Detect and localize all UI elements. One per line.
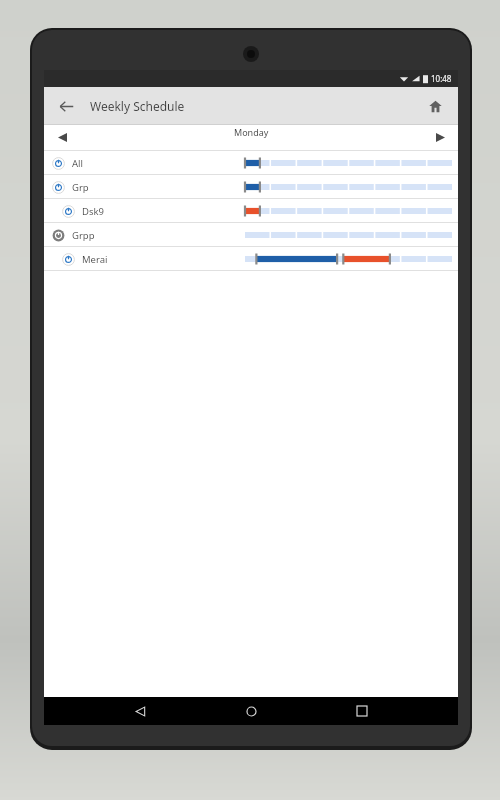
button[interactable]: Next day [430,127,450,147]
button[interactable]: Recents [347,697,377,725]
staticText: Merai [82,253,108,266]
staticText: All [72,157,83,170]
button[interactable]: Back [50,90,82,122]
button[interactable]: All [44,151,458,175]
staticText: Grpp [72,229,95,242]
staticText: 10:48 [431,73,452,84]
button[interactable]: Home [420,91,450,121]
staticText: Grp [72,181,89,194]
button[interactable]: Dsk9 [44,199,458,223]
button[interactable]: Home [236,697,266,725]
staticText: Weekly Schedule [90,98,185,114]
button[interactable]: Merai [44,247,458,271]
button[interactable]: Grp [44,175,458,199]
button[interactable]: Grpp [44,223,458,247]
staticText: Monday [234,126,269,138]
button[interactable]: Previous day [52,127,72,147]
button[interactable]: Back [125,697,155,725]
staticText: Dsk9 [82,205,104,218]
